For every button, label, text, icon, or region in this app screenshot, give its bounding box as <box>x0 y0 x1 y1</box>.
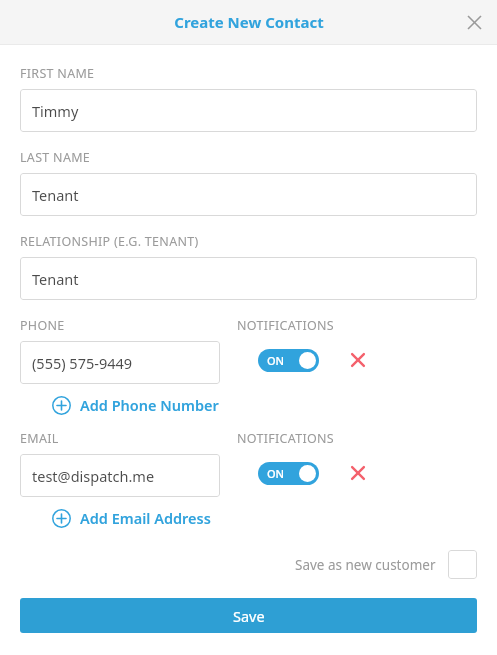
staticText: Add Email Address <box>80 508 211 528</box>
staticText: Save <box>233 606 265 626</box>
staticText: NOTIFICATIONS <box>237 317 335 334</box>
staticText: Save as new customer <box>295 556 436 574</box>
button[interactable]: Save <box>20 598 477 633</box>
button[interactable]: Remove <box>343 345 373 375</box>
staticText: LAST NAME <box>20 149 91 166</box>
staticText: Create New Contact <box>174 12 324 32</box>
button[interactable]: Close <box>457 5 491 39</box>
button[interactable]: (555) 575-9449 <box>20 341 220 384</box>
button[interactable]: Notifications on <box>258 349 319 372</box>
staticText: Tenant <box>32 185 79 205</box>
button[interactable]: Add Phone Number <box>52 391 219 419</box>
button[interactable]: Timmy <box>20 89 477 132</box>
staticText: (555) 575-9449 <box>32 353 133 373</box>
button[interactable]: Tenant <box>20 257 477 300</box>
staticText: FIRST NAME <box>20 65 95 82</box>
button[interactable]: Tenant <box>20 173 477 216</box>
staticText: Add Phone Number <box>80 395 219 415</box>
button[interactable]: Notifications on <box>258 462 319 485</box>
staticText: ON <box>267 353 285 368</box>
staticText: NOTIFICATIONS <box>237 430 335 447</box>
staticText: Timmy <box>32 101 79 121</box>
button[interactable]: test@dispatch.me <box>20 454 220 497</box>
button[interactable]: Save as new customer <box>0 550 477 579</box>
staticText: RELATIONSHIP (E.G. TENANT) <box>20 233 199 250</box>
staticText: Tenant <box>32 269 79 289</box>
staticText: test@dispatch.me <box>32 466 155 486</box>
button[interactable]: Remove <box>343 458 373 488</box>
staticText: ON <box>267 466 285 481</box>
staticText: EMAIL <box>20 430 59 447</box>
staticText: PHONE <box>20 317 65 334</box>
button[interactable]: Add Email Address <box>52 504 211 532</box>
